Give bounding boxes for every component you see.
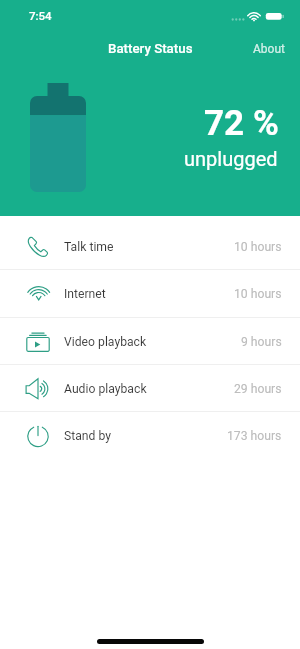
- button[interactable]: Internet: [0, 270, 300, 318]
- button[interactable]: Audio playback: [0, 365, 300, 412]
- button[interactable]: Talk time: [0, 224, 300, 270]
- staticText: 10 hours: [234, 240, 282, 254]
- staticText: Audio playback: [64, 382, 147, 396]
- staticText: 72 %: [204, 103, 279, 144]
- other: Status icons: [229, 8, 287, 26]
- staticText: 29 hours: [234, 382, 282, 396]
- button[interactable]: Video playback: [0, 318, 300, 365]
- staticText: 173 hours: [227, 429, 282, 443]
- button[interactable]: Stand by: [0, 412, 300, 460]
- staticText: unplugged: [184, 147, 278, 170]
- staticText: About: [253, 42, 285, 56]
- staticText: Stand by: [64, 429, 112, 443]
- button[interactable]: About: [247, 37, 291, 61]
- staticText: Battery Status: [108, 41, 193, 57]
- staticText: 7:54: [29, 9, 52, 22]
- staticText: Internet: [64, 287, 106, 301]
- staticText: Talk time: [64, 240, 114, 254]
- staticText: 9 hours: [241, 335, 282, 349]
- staticText: 10 hours: [234, 287, 282, 301]
- staticText: Video playback: [64, 335, 147, 349]
